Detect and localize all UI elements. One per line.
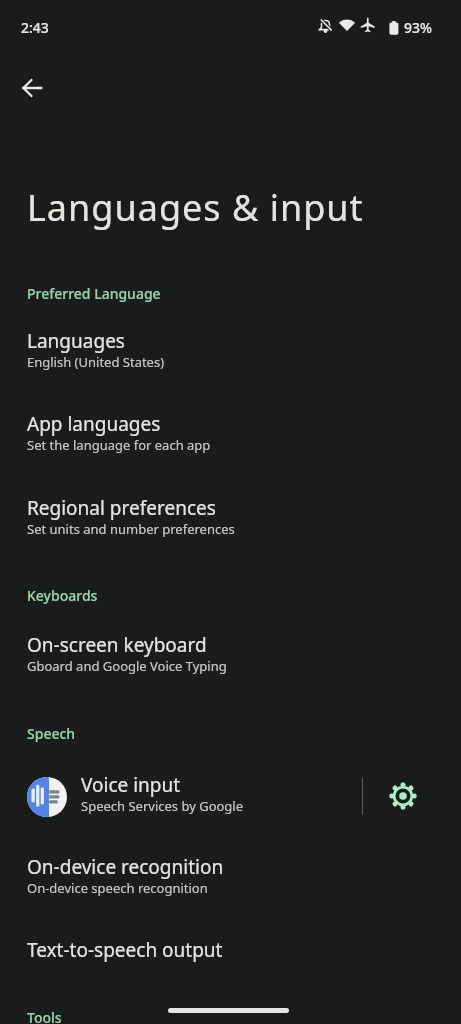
staticText: Gboard and Google Voice Typing — [27, 657, 227, 675]
staticText: 93% — [404, 18, 432, 37]
staticText: Keyboards — [27, 586, 98, 605]
staticText: Preferred Language — [27, 284, 161, 303]
staticText: On-device speech recognition — [27, 879, 208, 897]
button[interactable] — [379, 772, 427, 820]
staticText: Voice input — [81, 772, 181, 798]
button[interactable]: Languages — [0, 328, 461, 394]
staticText: Languages — [27, 328, 125, 354]
staticText: English (United States) — [27, 353, 165, 371]
button[interactable]: On-device recognition — [0, 854, 461, 920]
staticText: Regional preferences — [27, 495, 216, 521]
button[interactable] — [8, 64, 56, 112]
staticText: On-screen keyboard — [27, 632, 207, 658]
button[interactable]: App languages — [0, 411, 461, 477]
staticText: On-device recognition — [27, 854, 224, 880]
button[interactable]: On-screen keyboard — [0, 632, 461, 698]
button[interactable]: Voice input — [0, 766, 461, 828]
staticText: Languages & input — [27, 183, 364, 232]
staticText: Speech Services by Google — [81, 797, 244, 815]
button[interactable]: Regional preferences — [0, 495, 461, 561]
staticText: 2:43 — [21, 18, 49, 37]
staticText: Set units and number preferences — [27, 520, 235, 538]
staticText: App languages — [27, 411, 161, 437]
staticText: Speech — [27, 724, 76, 743]
staticText: Set the language for each app — [27, 436, 211, 454]
staticText: Text-to-speech output — [27, 937, 223, 963]
button[interactable]: Text-to-speech output — [0, 937, 461, 981]
staticText: Tools — [27, 1008, 62, 1024]
